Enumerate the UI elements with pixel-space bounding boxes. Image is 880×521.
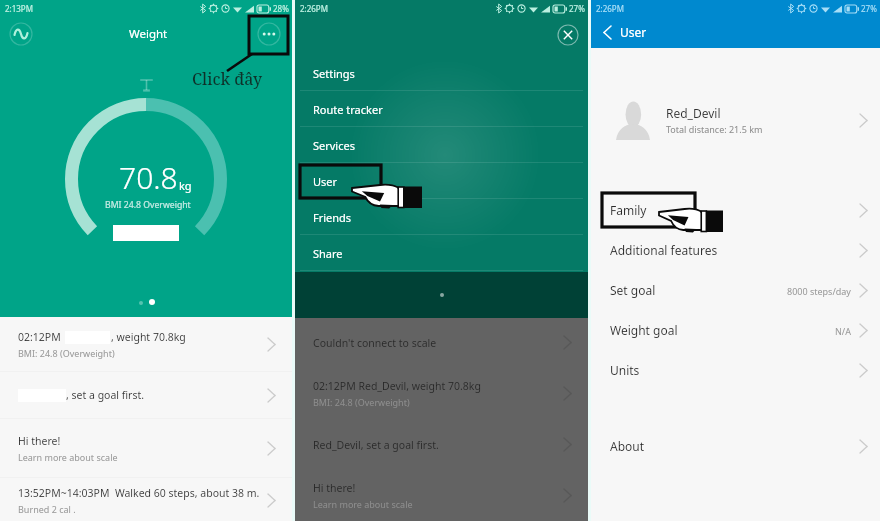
staticText: Click đây — [192, 68, 263, 90]
staticText: Red_Devil — [666, 105, 721, 121]
staticText: Weight — [129, 26, 168, 42]
staticText: 70.8 — [119, 157, 178, 198]
staticText: Services — [313, 138, 355, 153]
staticText: User — [313, 174, 338, 189]
button[interactable]: Weight goal — [591, 312, 880, 348]
staticText: Learn more about scale — [313, 498, 413, 510]
button[interactable]: Family — [591, 192, 880, 228]
button[interactable]: Couldn't connect to scale — [295, 317, 588, 368]
button[interactable]: 13:52PM~14:03PM Walked 60 steps, about 3… — [0, 478, 292, 521]
button[interactable]: Units — [591, 352, 880, 388]
staticText: Settings — [313, 66, 355, 81]
staticText: Weight goal — [610, 322, 678, 338]
button[interactable]: More options — [256, 21, 282, 47]
staticText: 02:12PM — [18, 330, 61, 344]
staticText: 13:52PM~14:03PM Walked 60 steps, about 3… — [18, 486, 260, 500]
staticText: Share — [313, 246, 343, 261]
button[interactable]: 02:12PM — [0, 318, 292, 371]
button[interactable]: 02:12PM Red_Devil, weight 70.8kg — [295, 368, 588, 419]
button[interactable]: Trends — [8, 21, 34, 47]
staticText: Units — [610, 362, 640, 378]
button[interactable]: About — [591, 428, 880, 464]
staticText: BMI 24.8 Overweight — [105, 199, 191, 211]
button[interactable]: User — [295, 163, 588, 199]
staticText: Family — [610, 202, 647, 218]
staticText: BMI: 24.8 (Overweight) — [313, 396, 410, 408]
button[interactable]: Share — [295, 235, 588, 271]
staticText: Burned 2 cal . — [18, 503, 76, 515]
button[interactable]: Back — [599, 20, 652, 44]
button[interactable]: Red_Devil, set a goal first. — [295, 419, 588, 470]
staticText: 2:26PM — [596, 3, 624, 14]
button[interactable]: Set goal — [591, 272, 880, 308]
button[interactable]: Friends — [295, 199, 588, 235]
staticText: 28% — [273, 3, 289, 14]
staticText: 27% — [569, 3, 585, 14]
button[interactable]: Settings — [295, 55, 588, 91]
staticText: 2:13PM — [5, 3, 33, 14]
button[interactable]: Services — [295, 127, 588, 163]
staticText: BMI: 24.8 (Overweight) — [18, 347, 115, 359]
staticText: N/A — [835, 325, 851, 337]
staticText: Total distance: 21.5 km — [666, 123, 763, 135]
staticText: Set goal — [610, 282, 656, 298]
staticText: 8000 steps/day — [787, 285, 851, 297]
staticText: 27% — [861, 3, 877, 14]
staticText: 2:26PM — [300, 3, 328, 14]
staticText: 02:12PM Red_Devil, weight 70.8kg — [313, 379, 481, 393]
staticText: About — [610, 438, 645, 454]
button[interactable]: Hi there! — [295, 470, 588, 521]
staticText: , weight 70.8kg — [111, 330, 186, 344]
button[interactable]: , set a goal first. — [0, 372, 292, 418]
staticText: Hi there! — [313, 481, 356, 495]
staticText: Red_Devil, set a goal first. — [313, 438, 439, 452]
staticText: Learn more about scale — [18, 451, 118, 463]
button[interactable]: Hi there! — [0, 419, 292, 477]
button[interactable]: Route tracker — [295, 91, 588, 127]
button[interactable]: Red_Devil — [591, 88, 880, 152]
staticText: Friends — [313, 210, 352, 225]
staticText: Additional features — [610, 242, 718, 258]
staticText: Hi there! — [18, 434, 61, 448]
staticText: Couldn't connect to scale — [313, 336, 437, 350]
staticText: kg — [179, 178, 192, 193]
staticText: , set a goal first. — [66, 388, 145, 402]
staticText: Route tracker — [313, 102, 383, 117]
button[interactable]: Additional features — [591, 232, 880, 268]
staticText: User — [620, 24, 647, 40]
button[interactable]: Close — [556, 23, 580, 47]
